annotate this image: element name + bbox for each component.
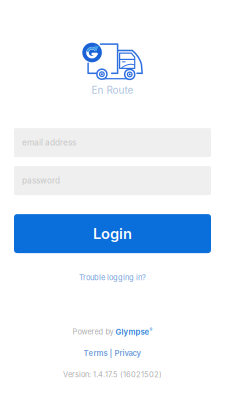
staticText: Glympse <box>115 327 149 337</box>
staticText: En Route <box>91 84 133 96</box>
button[interactable]: Trouble logging in? <box>79 273 146 282</box>
staticText: Login <box>93 225 132 242</box>
staticText: password <box>22 176 60 186</box>
staticText: Version: 1.4.17.5 (16021502) <box>63 370 162 379</box>
staticText: Powered by <box>72 327 115 336</box>
staticText: Trouble logging in? <box>79 273 146 282</box>
staticText: ® <box>149 327 152 332</box>
staticText: email address <box>22 138 76 148</box>
button[interactable]: password <box>14 166 211 195</box>
button[interactable]: email address <box>14 128 211 157</box>
staticText: Terms | Privacy <box>83 349 141 358</box>
button[interactable]: Terms | Privacy <box>83 349 141 358</box>
button[interactable]: Login <box>14 214 211 253</box>
